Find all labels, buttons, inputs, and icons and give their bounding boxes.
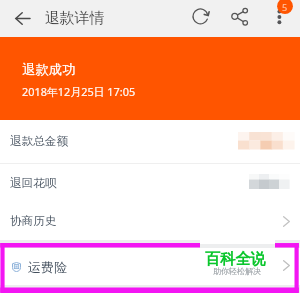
button[interactable]	[0, 203, 300, 240]
staticText: 退款总金额	[10, 134, 68, 149]
staticText: 运费险	[28, 259, 67, 275]
staticText: 5	[282, 1, 288, 13]
staticText: 退回花呗	[10, 176, 57, 191]
staticText: 2018年12月25日 17:05	[22, 84, 136, 99]
staticText: 助你轻松解决	[213, 266, 261, 276]
button[interactable]: Share	[226, 3, 255, 34]
button[interactable]: Refresh	[186, 3, 215, 34]
button[interactable]: 运费险	[0, 248, 300, 285]
button[interactable]: More options	[267, 3, 292, 34]
button[interactable]	[0, 120, 300, 163]
button[interactable]	[0, 164, 300, 203]
staticText: 百科全说	[205, 249, 266, 268]
staticText: 退款成功	[22, 61, 76, 78]
button[interactable]: Back	[8, 5, 36, 32]
button[interactable]: 百科全说	[196, 248, 292, 285]
staticText: 退款详情	[45, 9, 105, 28]
staticText: 协商历史	[10, 214, 57, 229]
